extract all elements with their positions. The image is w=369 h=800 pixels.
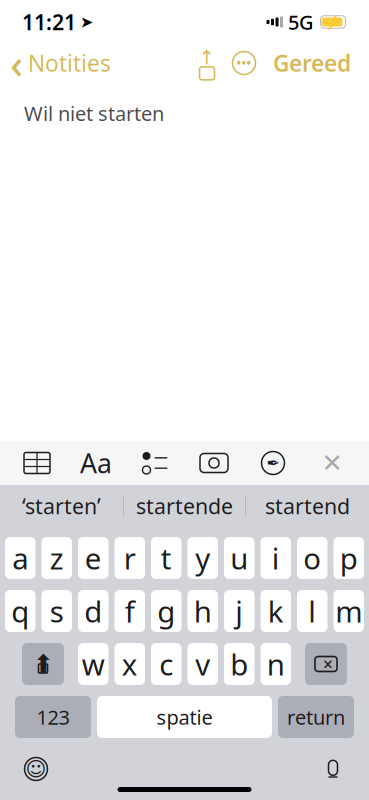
staticText: q xyxy=(11,591,29,630)
staticText: u xyxy=(230,538,248,577)
button[interactable]: f xyxy=(114,590,145,632)
staticText: × xyxy=(323,652,333,675)
staticText: d xyxy=(84,591,102,630)
button[interactable]: startende xyxy=(124,485,245,527)
staticText: e xyxy=(85,538,102,577)
button[interactable]: q xyxy=(5,590,35,632)
button[interactable]: Backspace xyxy=(305,643,347,685)
button[interactable]: Checklist xyxy=(133,445,177,481)
button[interactable]: l xyxy=(297,590,327,632)
staticText: startende xyxy=(136,492,233,520)
staticText: ‹ xyxy=(10,36,23,89)
staticText: 5G xyxy=(288,9,314,35)
button[interactable]: i xyxy=(260,537,291,579)
button[interactable]: startend xyxy=(246,485,369,527)
button[interactable]: u xyxy=(224,537,254,579)
staticText: l xyxy=(308,591,316,630)
button[interactable]: t xyxy=(151,537,181,579)
staticText: Aa xyxy=(80,445,112,481)
staticText: startend xyxy=(265,492,350,520)
staticText: r xyxy=(124,538,136,577)
staticText: 123 xyxy=(36,704,69,730)
button[interactable]: return xyxy=(278,696,354,738)
staticText: c xyxy=(159,644,173,683)
button[interactable]: m xyxy=(333,590,364,632)
staticText: o xyxy=(303,538,321,577)
staticText: j xyxy=(235,591,243,630)
staticText: f xyxy=(125,591,135,630)
button[interactable]: ‘starten’ xyxy=(0,485,123,527)
button[interactable]: Sluit xyxy=(310,445,354,481)
button[interactable]: ‹ xyxy=(0,32,111,93)
button[interactable]: s xyxy=(41,590,72,632)
staticText: ••• xyxy=(236,55,251,71)
staticText: p xyxy=(340,538,358,577)
staticText: Notities xyxy=(28,48,111,78)
button[interactable]: c xyxy=(151,643,181,685)
button[interactable]: v xyxy=(187,643,218,685)
staticText: t xyxy=(161,538,172,577)
button[interactable]: Shift xyxy=(22,643,64,685)
button[interactable]: h xyxy=(187,590,218,632)
staticText: h xyxy=(194,591,212,630)
staticText: n xyxy=(267,644,285,683)
button[interactable]: g xyxy=(151,590,181,632)
staticText: 11:21 xyxy=(22,8,76,36)
staticText: spatie xyxy=(156,704,212,730)
staticText: i xyxy=(272,538,280,577)
staticText: w xyxy=(82,644,105,683)
button[interactable]: spatie xyxy=(97,696,272,738)
button[interactable]: n xyxy=(260,643,291,685)
staticText: Gereed xyxy=(273,48,351,78)
button[interactable]: y xyxy=(187,537,218,579)
button[interactable]: j xyxy=(224,590,254,632)
staticText: g xyxy=(157,591,175,630)
staticText: x xyxy=(122,644,138,683)
button[interactable]: Tabel xyxy=(15,445,59,481)
staticText: ☺ xyxy=(25,758,46,780)
button[interactable]: 123 xyxy=(15,696,91,738)
button[interactable]: Dicteren xyxy=(311,749,355,789)
button[interactable]: x xyxy=(114,643,145,685)
button[interactable]: Emoji xyxy=(14,749,58,789)
staticText: y xyxy=(195,538,210,577)
staticText: s xyxy=(50,591,64,630)
staticText: ⬆ xyxy=(32,650,53,678)
button[interactable]: Markeringen xyxy=(251,445,295,481)
button[interactable]: Opmaak xyxy=(74,445,118,481)
staticText: z xyxy=(50,538,64,577)
staticText: ✕ xyxy=(321,449,342,477)
staticText: b xyxy=(230,644,248,683)
staticText: ‘starten’ xyxy=(22,492,101,520)
button[interactable]: o xyxy=(297,537,327,579)
button[interactable]: z xyxy=(41,537,72,579)
button[interactable]: Gereed xyxy=(263,44,361,82)
staticText: k xyxy=(268,591,284,630)
staticText: return xyxy=(287,704,345,730)
staticText: ➤ xyxy=(80,13,93,31)
button[interactable]: p xyxy=(333,537,364,579)
staticText: v xyxy=(195,644,210,683)
button[interactable]: Meer xyxy=(225,46,263,80)
staticText: ✒ xyxy=(266,454,279,472)
staticText: Wil niet starten xyxy=(24,100,164,127)
button[interactable]: b xyxy=(224,643,254,685)
staticText: ↑ xyxy=(198,46,215,69)
staticText: a xyxy=(12,538,28,577)
staticText: ⚡ xyxy=(323,14,340,30)
button[interactable]: k xyxy=(260,590,291,632)
button[interactable]: r xyxy=(114,537,145,579)
button[interactable]: w xyxy=(78,643,108,685)
staticText: m xyxy=(335,591,362,630)
button[interactable]: e xyxy=(78,537,108,579)
button[interactable]: d xyxy=(78,590,108,632)
button[interactable]: Camera xyxy=(192,445,236,481)
button[interactable]: Deel xyxy=(189,46,225,80)
button[interactable]: a xyxy=(5,537,35,579)
